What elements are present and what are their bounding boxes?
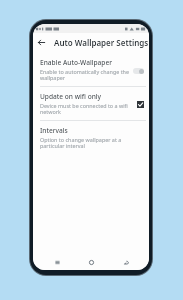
button[interactable]: Update on wifi only: [33, 90, 149, 118]
staticText: Intervals: [40, 126, 68, 135]
staticText: Enable to automatically change the wallp…: [40, 68, 129, 82]
button[interactable]: Enable Auto-Wallpaper: [33, 56, 149, 84]
staticText: Device must be connected to a wifi netwo…: [40, 102, 133, 116]
button[interactable]: Intervals: [33, 124, 149, 152]
staticText: Enable Auto-Wallpaper: [40, 58, 112, 67]
button[interactable]: Back: [115, 255, 137, 270]
button[interactable]: Update on wifi only checkbox: [136, 100, 145, 109]
button[interactable]: Enable Auto-Wallpaper toggle: [132, 66, 145, 75]
button[interactable]: Home: [80, 255, 102, 270]
staticText: Update on wifi only: [40, 92, 102, 101]
button[interactable]: Recents: [46, 255, 68, 270]
staticText: Option to change wallpaper at a particul…: [40, 136, 145, 150]
button[interactable]: Back: [35, 36, 48, 49]
staticText: Auto Wallpaper Settings: [54, 37, 149, 48]
